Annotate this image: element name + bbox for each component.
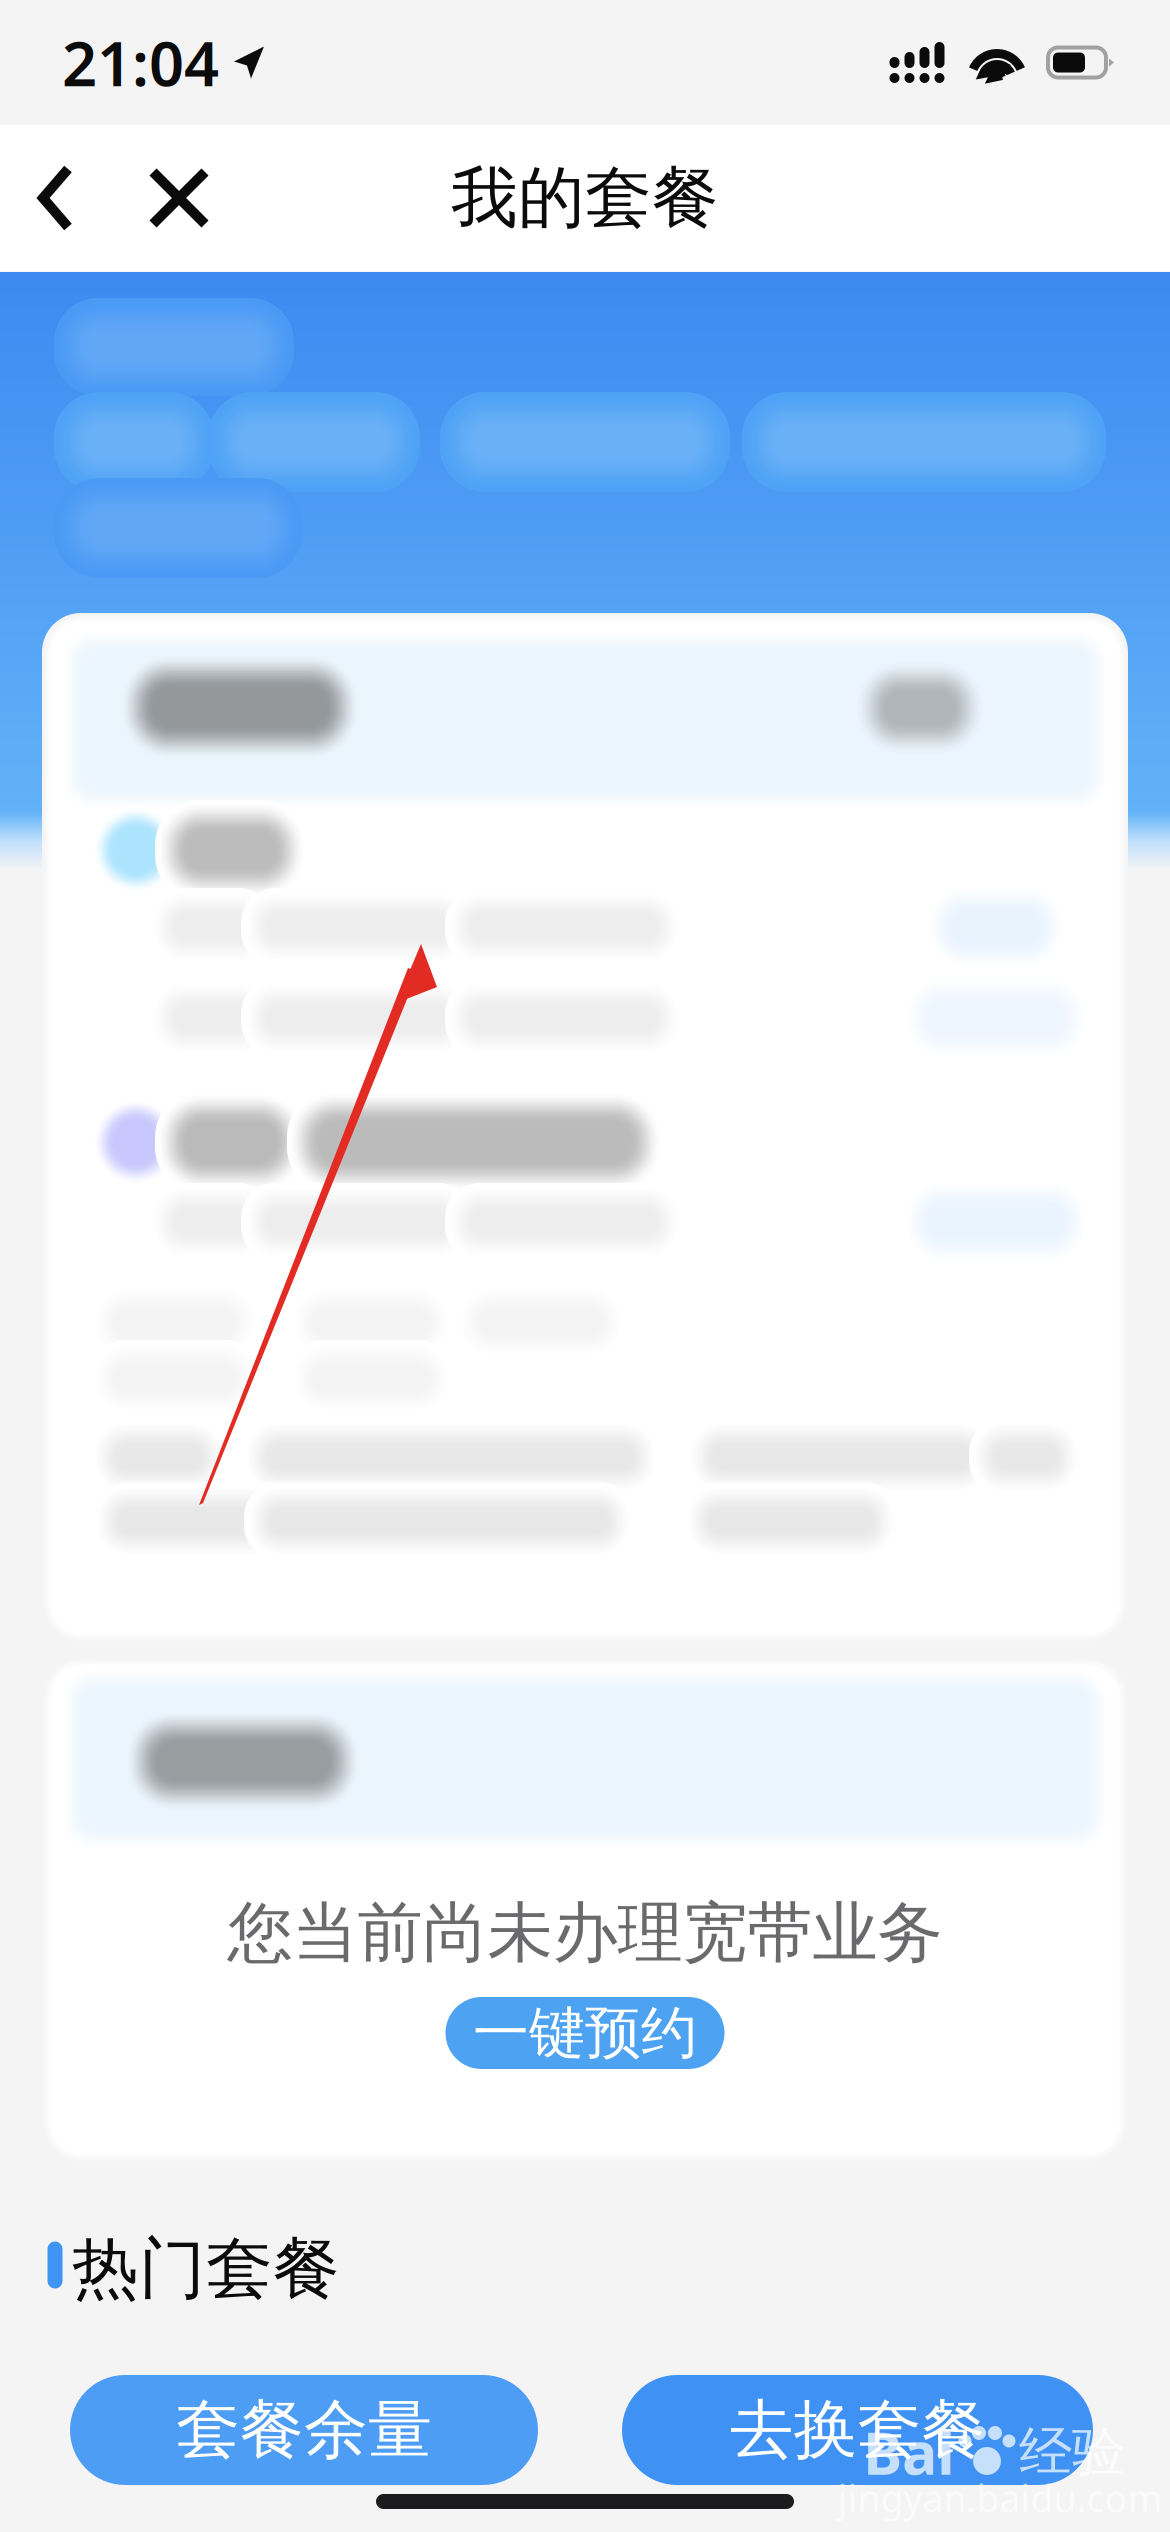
staticText: 去换套餐 bbox=[729, 2391, 985, 2469]
button[interactable]: 一键预约 bbox=[445, 1997, 724, 2069]
staticText: 我的套餐 bbox=[451, 157, 719, 239]
staticText: jingyan.baidu.com bbox=[837, 2473, 1162, 2523]
button[interactable]: Back bbox=[0, 125, 127, 271]
button[interactable]: 套餐余量 bbox=[70, 2375, 538, 2485]
staticText: 热门套餐 bbox=[72, 2228, 340, 2310]
staticText: 经验 bbox=[1019, 2419, 1125, 2485]
staticText: 您当前尚未办理宽带业务 bbox=[227, 1893, 942, 1973]
staticText: 一键预约 bbox=[473, 1999, 697, 2067]
button[interactable]: Close bbox=[127, 125, 231, 271]
button[interactable]: 去换套餐 bbox=[622, 2375, 1093, 2485]
staticText: 套餐余量 bbox=[176, 2391, 432, 2469]
staticText: 21:04 bbox=[62, 22, 219, 103]
staticText: Bai bbox=[863, 2413, 955, 2491]
